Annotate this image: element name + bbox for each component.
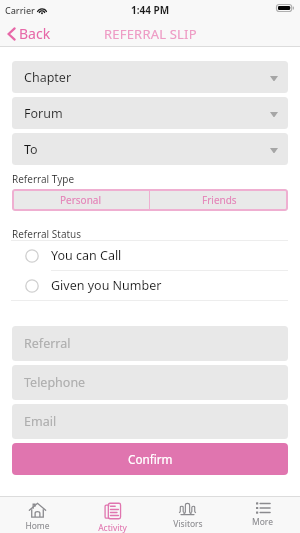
button[interactable]: Activity [75, 497, 150, 533]
button[interactable]: Friends [150, 189, 288, 211]
staticText: Visitors [173, 518, 203, 530]
staticText: Referral Status [12, 227, 82, 241]
staticText: Given you Number [51, 277, 162, 294]
staticText: Referral Type [12, 172, 75, 186]
staticText: Telephone [24, 374, 86, 391]
button[interactable]: Home [0, 497, 75, 533]
staticText: 1:44 PM [131, 3, 170, 17]
staticText: Chapter [24, 69, 72, 86]
staticText: You can Call [51, 247, 122, 264]
staticText: Carrier [5, 4, 35, 16]
button[interactable]: Forum [12, 97, 288, 129]
button[interactable]: Visitors [150, 497, 225, 533]
button[interactable]: You can Call [0, 241, 300, 270]
staticText: More [252, 516, 273, 528]
staticText: Home [25, 520, 50, 532]
button[interactable]: Confirm [12, 443, 288, 475]
staticText: Confirm [128, 451, 173, 467]
button[interactable]: Telephone [12, 365, 288, 400]
staticText: Referral [24, 335, 71, 352]
button[interactable]: Given you Number [0, 271, 300, 300]
button[interactable]: Email [12, 404, 288, 439]
staticText: Activity [98, 522, 127, 533]
button[interactable]: To [12, 133, 288, 165]
button[interactable]: Personal [12, 189, 149, 211]
button[interactable]: Referral [12, 326, 288, 361]
staticText: Email [24, 413, 57, 430]
staticText: Personal [60, 193, 102, 207]
staticText: REFERRAL SLIP [104, 25, 197, 43]
button[interactable]: Back [4, 20, 54, 47]
button[interactable]: Chapter [12, 61, 288, 93]
staticText: Forum [24, 105, 63, 122]
staticText: Friends [202, 193, 237, 207]
button[interactable]: More [225, 497, 300, 533]
staticText: To [24, 141, 38, 158]
staticText: Back [19, 24, 51, 43]
